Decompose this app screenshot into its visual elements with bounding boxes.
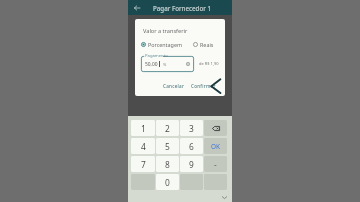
staticText: 0	[165, 177, 170, 188]
button[interactable]: 8	[156, 156, 179, 172]
staticText: Reais	[200, 41, 214, 48]
button[interactable]: Backspace	[204, 120, 227, 136]
button[interactable]: 9	[180, 156, 203, 172]
button[interactable]: Clear	[185, 61, 191, 67]
staticText: -	[214, 159, 217, 170]
staticText: 5	[165, 141, 170, 152]
staticText: 2	[165, 123, 170, 134]
staticText: %	[163, 62, 167, 67]
button[interactable]: 4	[131, 138, 155, 154]
staticText: Pagamento	[145, 53, 168, 59]
button[interactable]: Confirmar	[189, 81, 218, 91]
staticText: de R$ 1,90	[199, 61, 219, 66]
button[interactable]: 5	[156, 138, 179, 154]
staticText: Valor a transferir	[143, 27, 188, 35]
staticText: OK	[211, 142, 220, 151]
button[interactable]: 3	[180, 120, 203, 136]
staticText: 3	[189, 123, 194, 134]
button[interactable]: Cancelar	[161, 81, 187, 91]
staticText: Confirmar	[191, 83, 216, 89]
staticText: 7	[141, 159, 146, 170]
staticText: Pagar Fornecedor 1	[153, 4, 211, 12]
staticText: 6	[189, 141, 194, 152]
button[interactable]: 7	[131, 156, 155, 172]
staticText: 4	[141, 141, 146, 152]
staticText: Porcentagem	[148, 41, 182, 48]
button[interactable]: 1	[131, 120, 155, 136]
button[interactable]: Porcentagem	[141, 41, 182, 48]
button[interactable]: Hide keyboard	[220, 193, 228, 201]
button[interactable]: OK	[204, 138, 227, 154]
button[interactable]: 6	[180, 138, 203, 154]
button[interactable]: 0	[156, 174, 179, 190]
staticText: 8	[165, 159, 170, 170]
staticText: 50,00	[145, 61, 158, 68]
staticText: Cancelar	[163, 83, 185, 89]
staticText: 9	[189, 159, 194, 170]
button[interactable]: 2	[156, 120, 179, 136]
staticText: 1	[141, 123, 146, 134]
button[interactable]: Dash	[204, 156, 227, 172]
button[interactable]: Reais	[193, 41, 214, 48]
button[interactable]: Back	[132, 3, 141, 12]
